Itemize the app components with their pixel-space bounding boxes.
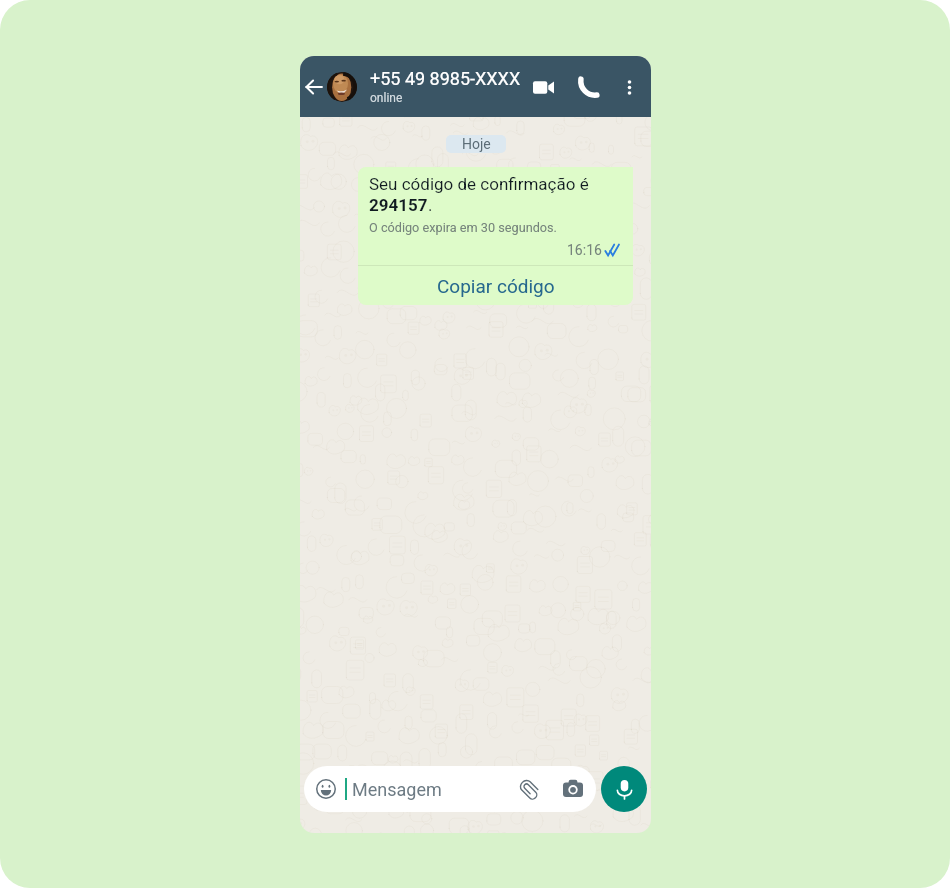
staticText: 294157 (369, 195, 428, 215)
staticText: . (428, 195, 433, 215)
button[interactable]: Copiar código (358, 266, 633, 305)
staticText: +55 49 8985-XXXX (370, 68, 521, 89)
button[interactable]: Voice call (572, 71, 604, 103)
button[interactable]: Video call (527, 71, 559, 103)
staticText: Seu código de confirmação é (369, 174, 589, 194)
button[interactable]: Hoje (446, 135, 506, 153)
button[interactable]: More options (614, 72, 644, 102)
staticText: Copiar código (437, 275, 555, 297)
staticText: online (370, 91, 403, 105)
button[interactable]: Contact photo (327, 72, 357, 102)
staticText: Hoje (462, 136, 491, 152)
button[interactable]: Record voice message (601, 766, 647, 812)
button[interactable]: Back (300, 65, 327, 109)
staticText: Mensagem (352, 779, 442, 800)
staticText: O código expira em 30 segundos. (369, 220, 557, 235)
button[interactable]: Mensagem (304, 766, 596, 812)
staticText: 16:16 (567, 242, 602, 258)
